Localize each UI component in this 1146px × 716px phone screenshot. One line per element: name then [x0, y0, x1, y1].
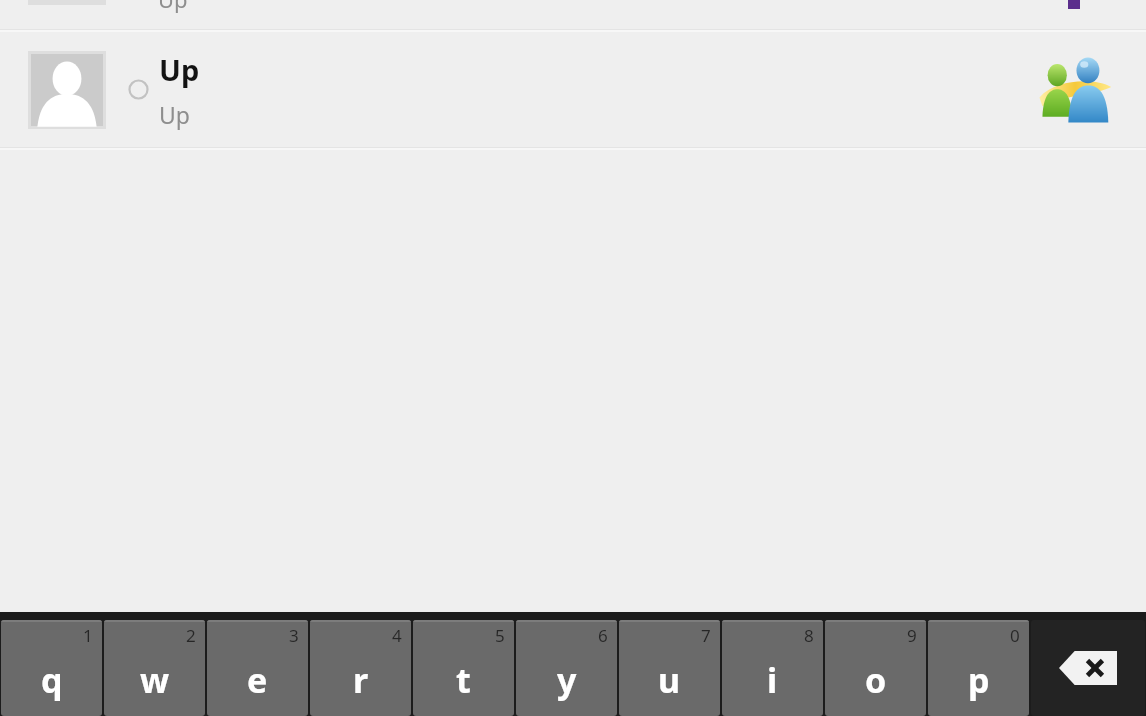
staticText: 9: [907, 624, 917, 647]
staticText: o: [865, 657, 887, 703]
staticText: e: [247, 657, 268, 703]
staticText: 2: [186, 624, 196, 647]
staticText: w: [140, 657, 170, 703]
staticText: Up: [159, 99, 190, 130]
staticText: 5: [495, 624, 505, 647]
button[interactable]: Backspace: [1031, 620, 1145, 716]
staticText: Up: [158, 0, 188, 13]
staticText: 7: [701, 624, 711, 647]
staticText: 3: [289, 624, 299, 647]
button[interactable]: Messenger: [1038, 53, 1112, 127]
staticText: 4: [392, 624, 402, 647]
staticText: p: [968, 657, 990, 703]
button[interactable]: 7: [619, 620, 720, 716]
button[interactable]: Up: [0, 32, 1146, 147]
button[interactable]: 0: [928, 620, 1029, 716]
button[interactable]: 9: [825, 620, 926, 716]
staticText: r: [353, 657, 369, 703]
button[interactable]: 2: [104, 620, 205, 716]
button[interactable]: 3: [207, 620, 308, 716]
staticText: q: [41, 657, 63, 703]
staticText: 0: [1010, 624, 1020, 647]
staticText: Up: [159, 50, 200, 89]
button[interactable]: 8: [722, 620, 823, 716]
staticText: t: [456, 657, 471, 703]
staticText: 6: [598, 624, 608, 647]
staticText: u: [658, 657, 681, 703]
staticText: y: [557, 657, 577, 703]
staticText: i: [767, 657, 778, 703]
staticText: 8: [804, 624, 814, 647]
button[interactable]: Up: [0, 0, 1146, 29]
button[interactable]: 6: [516, 620, 617, 716]
button[interactable]: 1: [1, 620, 102, 716]
button[interactable]: 4: [310, 620, 411, 716]
staticText: 1: [83, 624, 93, 647]
button[interactable]: 5: [413, 620, 514, 716]
